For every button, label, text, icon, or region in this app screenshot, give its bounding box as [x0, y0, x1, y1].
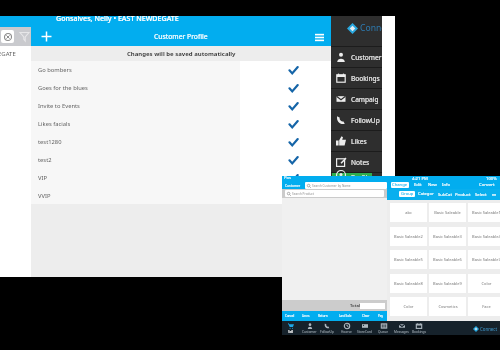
button[interactable]: Basic Saleable4	[468, 227, 500, 246]
staticText: Queue	[378, 330, 389, 334]
button[interactable]: Product	[455, 191, 471, 198]
button[interactable]: Basic Saleable8	[390, 274, 427, 293]
staticText: Color	[403, 304, 414, 309]
button[interactable]: Basic Saleable	[429, 203, 466, 222]
staticText: Category	[418, 191, 434, 198]
button[interactable]: Basic Saleable2	[390, 227, 427, 246]
button[interactable]: FollowUp	[331, 110, 382, 130]
staticText: Color	[481, 281, 492, 286]
staticText: Changes will be saved automatically	[127, 50, 236, 58]
button[interactable]: Go bombers	[31, 61, 331, 79]
button[interactable]: More	[490, 191, 497, 198]
button[interactable]: Menu	[313, 31, 325, 43]
staticText: Basic Saleable3	[433, 234, 462, 239]
button[interactable]: VIP	[31, 169, 331, 187]
staticText: Select	[475, 192, 487, 198]
staticText: Basic Saleable9	[433, 281, 462, 286]
button[interactable]: Search Customer by Name	[305, 182, 387, 189]
button[interactable]: Basic Saleable6	[429, 250, 466, 269]
button[interactable]: Search Product	[285, 190, 384, 197]
button[interactable]: Face	[468, 297, 500, 316]
staticText: Cancel	[285, 314, 295, 318]
staticText: Invite to Events	[38, 102, 80, 110]
button[interactable]: Clear	[358, 313, 374, 319]
button[interactable]: Lines	[298, 313, 314, 319]
staticText: Basic Saleable5	[394, 257, 423, 262]
button[interactable]: StoreCard	[355, 321, 373, 336]
button[interactable]: Filter	[18, 30, 31, 43]
button[interactable]: VVIP	[31, 187, 331, 204]
button[interactable]: Goes for the blues	[31, 79, 331, 97]
button[interactable]: Cosmetics	[429, 297, 466, 316]
staticText: Face	[482, 304, 491, 309]
staticText: Return	[318, 314, 328, 318]
staticText: Likes	[351, 137, 367, 146]
button[interactable]: Customer	[300, 321, 318, 336]
staticText: Bookings	[351, 74, 380, 83]
button[interactable]: Messages	[392, 321, 410, 336]
button[interactable]: Basic Saleable3	[429, 227, 466, 246]
button[interactable]: Basic Saleable5	[390, 250, 427, 269]
button[interactable]: test1280	[31, 133, 331, 151]
staticText: Campaigns	[351, 95, 382, 104]
button[interactable]: New	[426, 181, 438, 188]
staticText: Customer Profile	[154, 32, 208, 41]
button[interactable]: Sell	[282, 321, 300, 336]
staticText: Connect	[480, 326, 498, 332]
staticText: Product	[455, 192, 471, 198]
staticText: VIP	[38, 174, 47, 182]
staticText: Change	[392, 182, 408, 188]
staticText: Customer	[285, 183, 301, 187]
staticText: Basic Saleable	[434, 210, 461, 215]
button[interactable]: test2	[31, 151, 331, 169]
button[interactable]: Pay	[373, 313, 389, 319]
staticText: Notes	[351, 158, 370, 167]
button[interactable]: Notes	[331, 152, 382, 172]
staticText: EGATE	[0, 50, 16, 58]
button[interactable]: Basic Saleable7	[468, 250, 500, 269]
staticText: Sell	[288, 330, 294, 334]
staticText: Bookings	[412, 330, 426, 334]
button[interactable]: Customer	[331, 47, 382, 67]
staticText: FollowUp	[351, 116, 380, 125]
button[interactable]: Category	[418, 191, 434, 198]
button[interactable]: Likes	[331, 131, 382, 151]
button[interactable]: Profile	[331, 173, 382, 177]
button[interactable]: abc	[390, 203, 427, 222]
button[interactable]: Basic Saleable9	[429, 274, 466, 293]
staticText: Basic Saleable4	[472, 234, 500, 239]
button[interactable]: Color	[468, 274, 500, 293]
button[interactable]: Basic Saleable1	[468, 203, 500, 222]
staticText: Gonsalves, Nelly • EAST NEWDEGATE	[56, 13, 179, 23]
button[interactable]: Campaigns	[331, 89, 382, 109]
button[interactable]: Info	[440, 181, 452, 188]
staticText: Basic Saleable8	[394, 281, 423, 286]
button[interactable]: SubCat	[437, 191, 453, 198]
button[interactable]: FollowUp	[318, 321, 336, 336]
button[interactable]: Invite to Events	[31, 97, 331, 115]
button[interactable]: Cancel	[282, 313, 298, 319]
staticText: FollowUp	[320, 330, 334, 334]
staticText: Goes for the blues	[38, 84, 88, 92]
button[interactable]: Convert	[477, 181, 497, 188]
button[interactable]: Clear filter	[1, 30, 14, 43]
staticText: test2	[38, 156, 52, 164]
staticText: Info	[442, 182, 450, 188]
button[interactable]: Hoarse	[337, 321, 355, 336]
button[interactable]: Return	[315, 313, 331, 319]
staticText: test1280	[38, 138, 62, 146]
button[interactable]: Bookings	[410, 321, 428, 336]
button[interactable]: Select	[473, 191, 489, 198]
button[interactable]: Edit	[412, 181, 424, 188]
button[interactable]: Add	[40, 30, 53, 43]
button[interactable]: Change	[391, 182, 409, 188]
staticText: Customer	[351, 53, 382, 62]
staticText: SubCat	[438, 192, 452, 198]
button[interactable]: Bookings	[331, 68, 382, 88]
button[interactable]: Queue	[374, 321, 392, 336]
button[interactable]: Color	[390, 297, 427, 316]
button[interactable]: Group	[399, 191, 415, 197]
staticText: StoreCard	[357, 330, 372, 334]
button[interactable]: Likes facials	[31, 115, 331, 133]
button[interactable]: Last Sale	[337, 313, 353, 319]
